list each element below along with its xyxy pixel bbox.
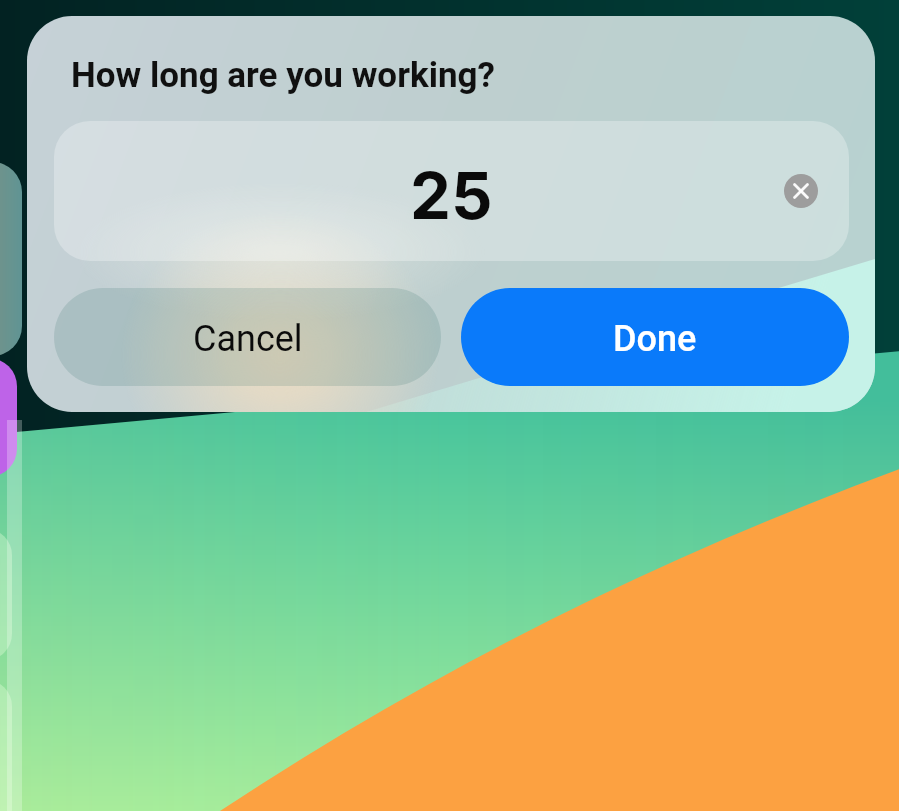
button[interactable]: 25: [54, 121, 849, 261]
button[interactable]: Done: [461, 288, 849, 386]
button[interactable]: Cancel: [54, 288, 441, 386]
button[interactable]: Clear: [784, 174, 818, 208]
staticText: 25: [410, 156, 493, 235]
staticText: Cancel: [193, 318, 303, 360]
staticText: How long are you working?: [71, 55, 495, 96]
staticText: Done: [613, 318, 697, 360]
